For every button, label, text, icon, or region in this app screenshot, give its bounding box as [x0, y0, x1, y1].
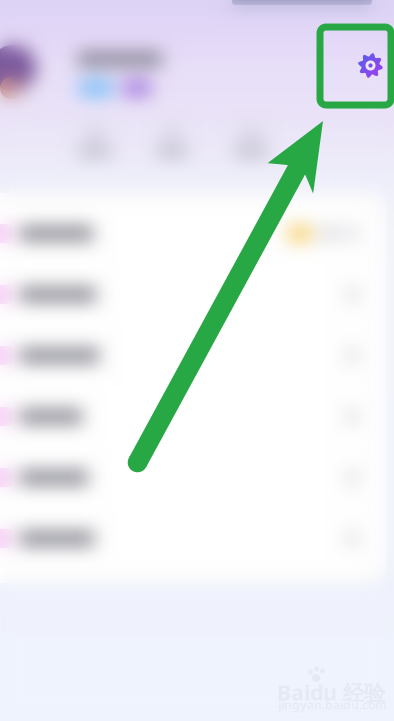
- button[interactable]: [0, 325, 386, 386]
- button[interactable]: [0, 203, 386, 264]
- staticText: Baidu 经验: [277, 678, 385, 706]
- button[interactable]: Settings: [320, 27, 391, 105]
- staticText: jingyan.baidu.com: [278, 697, 387, 713]
- button[interactable]: [0, 264, 386, 325]
- button[interactable]: [0, 386, 386, 447]
- button[interactable]: [0, 447, 386, 508]
- button[interactable]: [0, 508, 386, 569]
